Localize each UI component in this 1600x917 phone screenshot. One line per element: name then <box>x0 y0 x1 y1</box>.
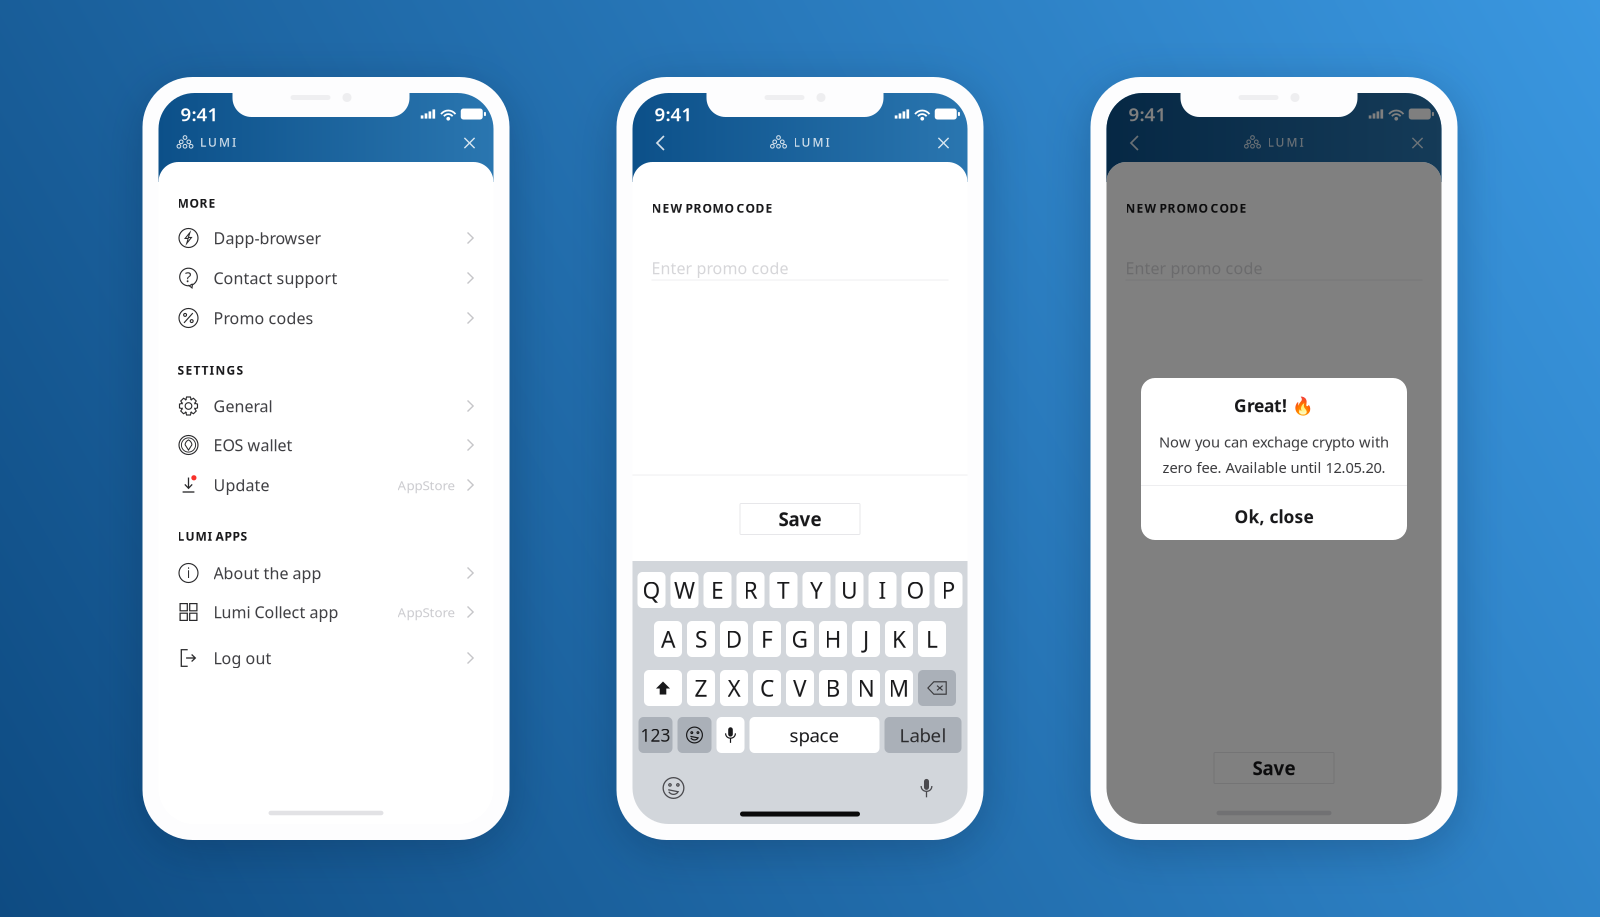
staticText: Dapp-browser <box>213 227 321 249</box>
staticText: General <box>213 395 272 417</box>
staticText: AppStore <box>397 476 455 494</box>
staticText: C <box>760 673 774 703</box>
button[interactable]: L <box>918 621 946 657</box>
staticText: N <box>857 673 874 703</box>
button[interactable]: Label <box>884 717 961 753</box>
button[interactable]: Back <box>643 126 677 160</box>
button[interactable]: T <box>769 572 797 608</box>
button[interactable]: Log out <box>177 640 474 676</box>
button[interactable]: Q <box>637 572 665 608</box>
button[interactable]: Z <box>687 670 715 706</box>
staticText: X <box>727 673 740 703</box>
button[interactable]: i <box>177 555 474 591</box>
button[interactable]: Shift <box>644 670 682 706</box>
staticText: D <box>725 624 742 654</box>
staticText: L <box>926 624 938 654</box>
button[interactable]: Close <box>1400 126 1434 160</box>
staticText: M <box>888 673 909 703</box>
button[interactable]: Y <box>802 572 830 608</box>
button[interactable]: Save <box>740 503 860 534</box>
button[interactable]: V <box>786 670 814 706</box>
button[interactable]: Emoji keyboard <box>655 773 691 803</box>
staticText: Save <box>778 507 821 531</box>
button[interactable]: ? <box>177 260 474 296</box>
staticText: Update <box>213 474 269 496</box>
button[interactable]: W <box>670 572 698 608</box>
staticText: space <box>789 723 839 747</box>
staticText: Promo codes <box>213 307 313 329</box>
staticText: Contact support <box>213 267 337 289</box>
staticText: E <box>711 575 724 605</box>
button[interactable]: J <box>852 621 880 657</box>
button[interactable]: P <box>934 572 962 608</box>
staticText: T <box>777 575 790 605</box>
button[interactable]: Delete <box>918 670 956 706</box>
staticText: U <box>841 575 858 605</box>
button[interactable]: Dictate <box>716 717 744 753</box>
staticText: B <box>825 673 840 703</box>
button[interactable]: K <box>885 621 913 657</box>
button[interactable]: B <box>819 670 847 706</box>
staticText: 9:41 <box>654 102 692 126</box>
button[interactable]: N <box>852 670 880 706</box>
button[interactable]: Emoji <box>677 717 711 753</box>
button[interactable]: C <box>753 670 781 706</box>
staticText: Lumi Collect app <box>213 601 338 623</box>
button[interactable]: space <box>749 717 879 753</box>
staticText: R <box>743 575 757 605</box>
button[interactable]: S <box>687 621 715 657</box>
staticText: L U M I <box>200 134 236 150</box>
button[interactable]: Dapp-browser <box>177 220 474 256</box>
staticText: L U M I <box>1267 134 1303 150</box>
staticText: H <box>824 624 841 654</box>
button[interactable]: EOS wallet <box>177 427 474 463</box>
staticText: About the app <box>213 562 321 584</box>
staticText: V <box>793 673 807 703</box>
button[interactable]: Update <box>177 467 474 503</box>
button[interactable]: D <box>720 621 748 657</box>
staticText: I <box>878 575 886 605</box>
button[interactable]: I <box>868 572 896 608</box>
staticText: P <box>941 575 955 605</box>
staticText: Enter promo code <box>651 257 788 279</box>
button[interactable]: X <box>720 670 748 706</box>
button[interactable]: U <box>835 572 863 608</box>
staticText: L U M I A P P S <box>177 528 247 544</box>
staticText: AppStore <box>397 603 455 621</box>
staticText: EOS wallet <box>213 434 292 456</box>
button[interactable]: 123 <box>638 717 672 753</box>
staticText: N E W P R O M O C O D E <box>651 200 772 216</box>
staticText: ? <box>185 267 191 286</box>
button[interactable]: R <box>736 572 764 608</box>
button[interactable]: M <box>885 670 913 706</box>
button[interactable]: Promo codes <box>177 300 474 336</box>
staticText: zero fee. Available until 12.05.20. <box>1162 457 1385 477</box>
button[interactable]: O <box>901 572 929 608</box>
button[interactable]: Dictation <box>908 773 944 803</box>
button[interactable]: E <box>703 572 731 608</box>
staticText: Log out <box>213 647 271 669</box>
button[interactable]: Save <box>1214 752 1334 783</box>
staticText: Ok, close <box>1234 505 1313 528</box>
staticText: K <box>892 624 906 654</box>
button[interactable]: Close <box>926 126 960 160</box>
staticText: 9:41 <box>180 102 218 126</box>
staticText: Z <box>694 673 707 703</box>
button[interactable]: G <box>786 621 814 657</box>
button[interactable]: H <box>819 621 847 657</box>
button[interactable]: Close <box>452 126 486 160</box>
staticText: J <box>863 624 869 654</box>
staticText: N E W P R O M O C O D E <box>1125 200 1246 216</box>
button[interactable]: General <box>177 388 474 424</box>
staticText: S E T T I N G S <box>177 362 243 378</box>
staticText: Enter promo code <box>1125 257 1262 279</box>
button[interactable]: Ok, close <box>1141 486 1407 547</box>
staticText: F <box>761 624 773 654</box>
button[interactable]: A <box>654 621 682 657</box>
staticText: M O R E <box>177 195 215 211</box>
button[interactable]: Lumi Collect app <box>177 594 474 630</box>
button[interactable]: F <box>753 621 781 657</box>
button[interactable]: Back <box>1117 126 1151 160</box>
staticText: Now you can exchage crypto with <box>1159 432 1389 451</box>
staticText: L U M I <box>793 134 829 150</box>
